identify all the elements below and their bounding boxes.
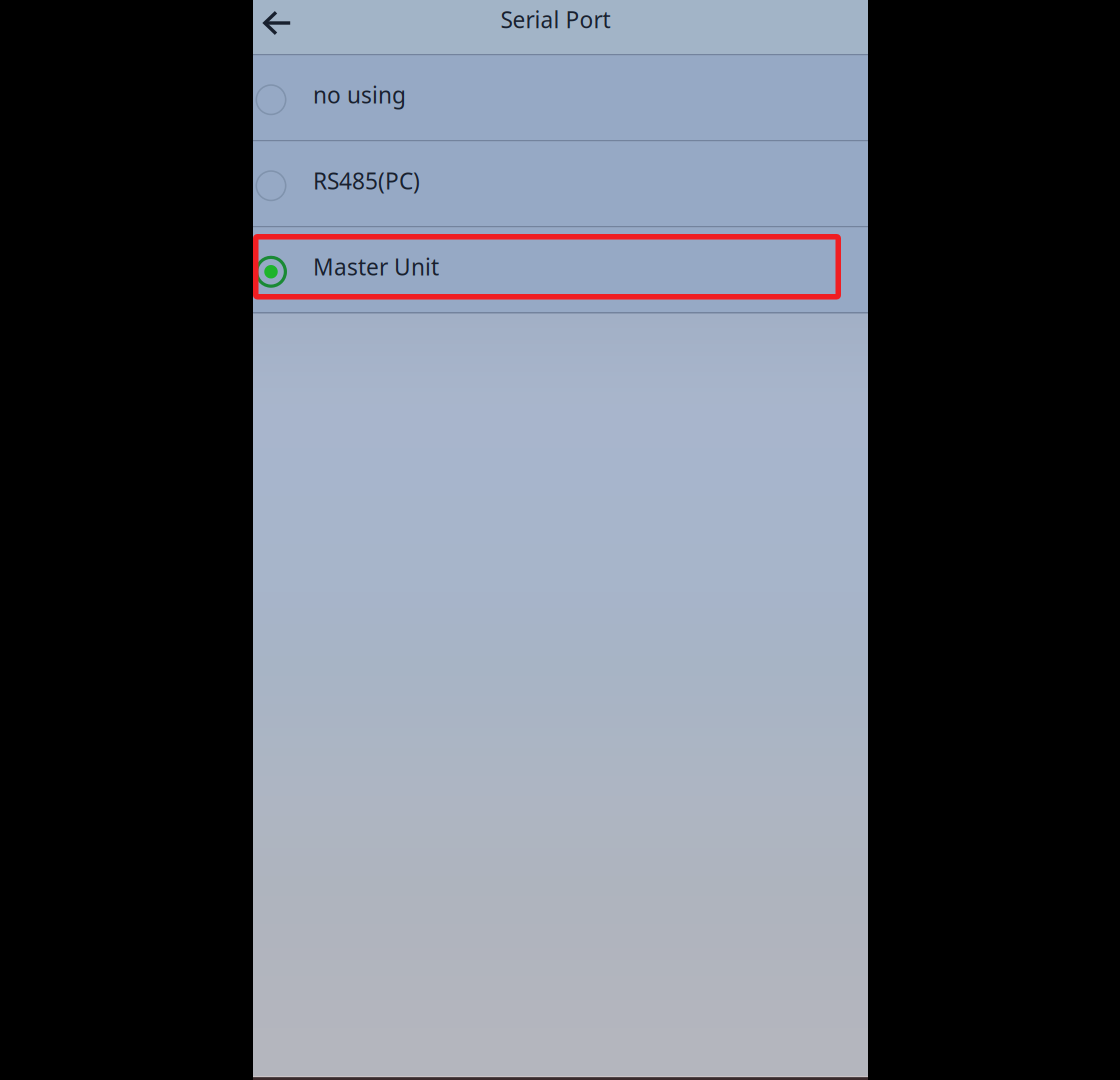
staticText: no using xyxy=(313,80,406,110)
button[interactable]: RS485(PC) xyxy=(253,141,868,226)
staticText: Serial Port xyxy=(500,4,610,34)
staticText: RS485(PC) xyxy=(313,166,420,196)
button[interactable]: Back xyxy=(253,0,309,54)
button[interactable]: no using xyxy=(253,55,868,140)
button[interactable]: Master Unit xyxy=(253,227,868,312)
staticText: Master Unit xyxy=(313,252,439,282)
